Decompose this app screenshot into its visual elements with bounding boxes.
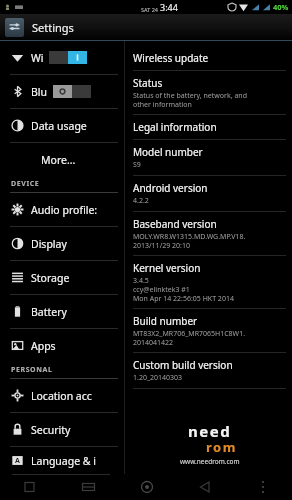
staticText: Status [133, 76, 163, 90]
staticText: SAT 24 [141, 6, 160, 13]
staticText: Kernel version [133, 261, 201, 275]
staticText: 3:44 [160, 1, 178, 13]
staticText: Wireless update [133, 51, 209, 65]
staticText: DEVICE [11, 179, 40, 189]
staticText: Apps [31, 339, 56, 353]
button[interactable]: More... [0, 143, 124, 176]
staticText: Audio profile: [31, 203, 98, 217]
staticText: www.needrom.com [180, 457, 240, 466]
staticText: Storage [31, 271, 70, 285]
staticText: Model number [133, 145, 203, 159]
button[interactable]: Settings icon [0, 14, 292, 41]
staticText: Legal information [133, 120, 217, 134]
button[interactable]: bt [0, 75, 124, 108]
button[interactable]: language [0, 447, 124, 474]
button[interactable]: Android version [133, 176, 286, 211]
other: apps [11, 339, 24, 352]
button[interactable]: Back [176, 474, 234, 500]
other: audio [11, 203, 24, 216]
button[interactable]: Model number [133, 140, 286, 175]
other: display [11, 237, 24, 250]
button[interactable]: battery [0, 295, 124, 328]
button[interactable]: Kernel version [133, 256, 286, 308]
button[interactable]: Home [118, 474, 176, 500]
staticText: Location acc [31, 389, 92, 403]
button[interactable]: Toggle off [53, 85, 91, 98]
other: storage [11, 271, 24, 284]
staticText: Blu [31, 85, 48, 99]
other: language [11, 454, 24, 467]
staticText: MT83X2_MR706_MR7065H1C8W1. 2014041422 [133, 329, 246, 347]
other: Settings icon [5, 18, 24, 37]
button[interactable]: Status [133, 71, 286, 114]
staticText: 4.2.2 [133, 196, 149, 206]
staticText: Custom build version [133, 358, 233, 372]
staticText: MOLY.WR8.W1315.MD.WG.MP.V18. 2013/11/29 … [133, 232, 246, 250]
other: location [11, 389, 24, 402]
button[interactable]: wifi [0, 41, 124, 74]
staticText: 1.20_20140303 [133, 373, 183, 383]
button[interactable]: location [0, 379, 124, 412]
staticText: A [15, 456, 20, 466]
staticText: Battery [31, 305, 67, 319]
button[interactable]: storage [0, 261, 124, 294]
button[interactable]: Wireless update [133, 46, 286, 70]
other: battery [11, 305, 24, 318]
staticText: Build number [133, 314, 198, 328]
staticText: Settings [32, 20, 74, 35]
staticText: Wi [31, 51, 44, 65]
staticText: Display [31, 237, 67, 251]
button[interactable]: data [0, 109, 124, 142]
staticText: rom [206, 438, 237, 456]
button[interactable]: Recents [0, 474, 59, 500]
staticText: PERSONAL [11, 365, 53, 375]
staticText: Status of the battery, network, and othe… [133, 91, 247, 109]
button[interactable]: Menu [234, 474, 292, 500]
staticText: 40% [273, 2, 289, 12]
button[interactable]: Toggle on [49, 51, 87, 64]
button[interactable]: apps [0, 329, 124, 362]
other: wifi [11, 51, 24, 64]
staticText: Data usage [31, 119, 87, 133]
button[interactable]: Split screen [59, 474, 118, 500]
other: bt [11, 85, 24, 98]
staticText: More... [41, 153, 76, 167]
staticText: Android version [133, 181, 208, 195]
staticText: 3.4.5 ccy@elinktek3 #1 Mon Apr 14 22:56:… [133, 276, 234, 303]
button[interactable]: audio [0, 193, 124, 226]
button[interactable]: Baseband version [133, 212, 286, 255]
staticText: S9 [133, 160, 141, 170]
button[interactable]: security [0, 413, 124, 446]
other: security [11, 423, 24, 436]
button[interactable]: Build number [133, 309, 286, 352]
button[interactable]: Legal information [133, 115, 286, 139]
button[interactable]: display [0, 227, 124, 260]
staticText: Security [31, 423, 71, 437]
staticText: Language & i [31, 454, 96, 468]
button[interactable]: Custom build version [133, 353, 286, 388]
staticText: Baseband version [133, 217, 217, 231]
other: data [11, 119, 24, 132]
staticText: need [188, 421, 232, 441]
